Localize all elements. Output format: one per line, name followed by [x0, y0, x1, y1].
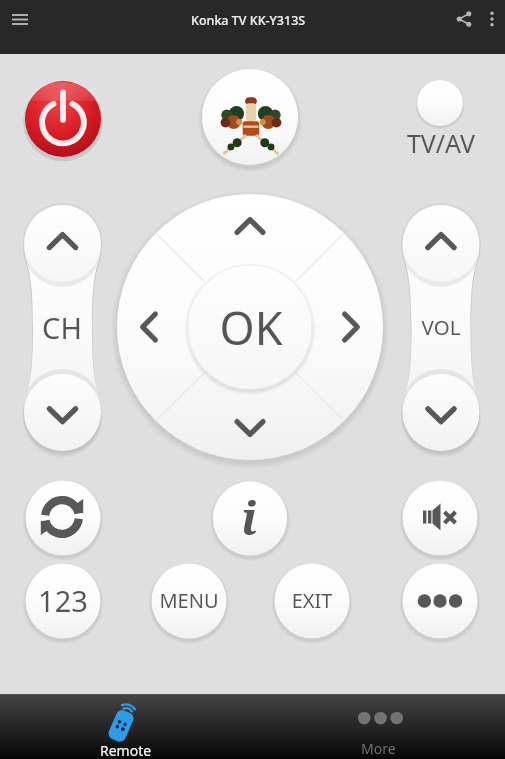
staticText: More — [361, 739, 396, 758]
button[interactable]: Down — [205, 383, 295, 473]
staticText: TV/AV — [371, 126, 505, 160]
button[interactable]: Menu — [152, 564, 226, 638]
button[interactable]: Power — [25, 81, 101, 157]
button[interactable]: Source — [202, 69, 298, 165]
staticText: EXIT — [242, 587, 382, 614]
button[interactable]: Info — [214, 481, 288, 555]
staticText: i — [209, 487, 289, 548]
button[interactable]: Channel up — [24, 207, 100, 283]
staticText: 123 — [0, 581, 133, 620]
button[interactable]: Right — [307, 282, 397, 372]
button[interactable]: Numbers — [26, 564, 100, 638]
staticText: Konka TV KK-Y313S — [191, 12, 306, 29]
button[interactable]: More buttons — [403, 564, 477, 638]
staticText: Remote — [100, 741, 152, 759]
button[interactable]: Up — [205, 181, 295, 271]
button[interactable]: Exit — [275, 564, 349, 638]
button[interactable]: Volume up — [402, 207, 478, 283]
button[interactable]: Channel down — [24, 369, 100, 445]
button[interactable]: Mute — [403, 481, 477, 555]
button[interactable]: More options — [479, 0, 505, 38]
button[interactable]: Volume down — [402, 369, 478, 445]
staticText: CH — [0, 308, 132, 347]
button[interactable]: Left — [103, 282, 193, 372]
staticText: VOL — [371, 313, 505, 341]
staticText: OK — [181, 297, 321, 358]
button[interactable]: TV AV — [410, 73, 470, 133]
button[interactable]: Share — [449, 0, 479, 38]
button[interactable]: Remote — [0, 694, 252, 759]
button[interactable]: OK — [188, 265, 312, 389]
button[interactable]: Swap — [26, 481, 100, 555]
button[interactable]: Navigation menu — [0, 0, 40, 38]
staticText: MENU — [119, 587, 259, 614]
button[interactable]: More — [252, 694, 505, 759]
